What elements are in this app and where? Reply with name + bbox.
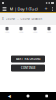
button[interactable]: Add — [28, 25, 42, 35]
staticText: ◀ — [8, 94, 11, 98]
staticText: + — [44, 5, 47, 13]
button[interactable]: Back — [0, 92, 19, 100]
button[interactable]: Recents — [37, 92, 56, 100]
button[interactable]: Record — [14, 25, 28, 35]
staticText: START RECORDING — [15, 57, 40, 61]
staticText: Label — [47, 31, 51, 33]
button[interactable]: START RECORDING — [11, 55, 45, 62]
button[interactable]: Document — [0, 25, 14, 35]
button[interactable]: Home — [19, 92, 37, 100]
staticText: Course - Course Location — [5, 17, 42, 21]
staticText: M | Day 1 (Tue) — [9, 6, 37, 12]
staticText: Label — [5, 31, 9, 33]
button[interactable]: CONTINUE — [11, 64, 45, 71]
staticText: X — [2, 17, 4, 21]
staticText: Label — [33, 31, 37, 33]
staticText: CONTINUE — [21, 66, 35, 70]
button[interactable]: Add — [43, 6, 48, 12]
button[interactable]: Stop — [42, 25, 56, 35]
staticText: Label — [19, 31, 23, 33]
button[interactable]: More options — [50, 6, 54, 12]
button[interactable]: Menu — [1, 6, 7, 12]
